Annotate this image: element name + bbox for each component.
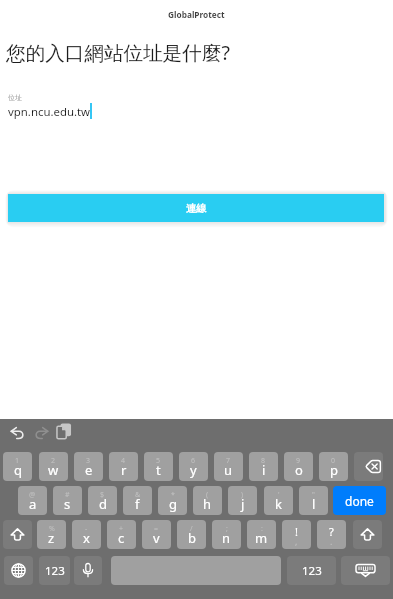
staticText: j <box>241 495 245 513</box>
button[interactable]: 3 <box>74 452 103 481</box>
button[interactable]: : <box>247 520 276 549</box>
staticText: ' <box>278 490 280 500</box>
button[interactable]: ' <box>264 486 293 515</box>
button[interactable]: $ <box>88 486 117 515</box>
staticText: t <box>156 461 161 479</box>
staticText: x <box>83 529 90 547</box>
staticText: l <box>312 495 316 513</box>
staticText: # <box>65 490 70 500</box>
staticText: , <box>295 535 298 547</box>
staticText: a <box>29 495 37 513</box>
staticText: * <box>171 490 175 500</box>
button[interactable]: Undo <box>6 421 28 443</box>
staticText: f <box>135 495 140 513</box>
staticText: & <box>135 490 141 500</box>
staticText: 0 <box>331 456 336 466</box>
button[interactable]: & <box>123 486 152 515</box>
staticText: ) <box>241 490 244 500</box>
button[interactable]: 6 <box>179 452 208 481</box>
staticText: h <box>203 495 212 513</box>
staticText: o <box>295 461 303 479</box>
button[interactable]: 1 <box>3 452 32 481</box>
button[interactable]: 9 <box>284 452 313 481</box>
button[interactable]: # <box>53 486 82 515</box>
staticText: y <box>190 461 197 479</box>
button[interactable]: @ <box>18 486 47 515</box>
button[interactable]: % <box>37 520 66 549</box>
staticText: done <box>345 493 374 509</box>
button[interactable]: ( <box>193 486 222 515</box>
staticText: k <box>275 495 282 513</box>
staticText: g <box>169 495 177 513</box>
staticText: 3 <box>86 456 91 466</box>
staticText: ( <box>206 490 209 500</box>
staticText: @ <box>29 490 36 500</box>
button[interactable]: Backspace <box>354 452 383 481</box>
staticText: 4 <box>121 456 126 466</box>
staticText: 9 <box>296 456 301 466</box>
button[interactable]: 2 <box>39 452 68 481</box>
staticText: i <box>262 461 266 479</box>
staticText: ; <box>226 524 228 534</box>
button[interactable]: ! <box>282 520 311 549</box>
button[interactable]: 5 <box>144 452 173 481</box>
button[interactable]: Shift <box>3 520 32 549</box>
button[interactable]: " <box>299 486 328 515</box>
button[interactable]: 8 <box>249 452 278 481</box>
button[interactable]: + <box>107 520 136 549</box>
button[interactable]: * <box>158 486 187 515</box>
staticText: % <box>49 524 55 534</box>
staticText: m <box>255 529 268 547</box>
staticText: 123 <box>302 563 322 579</box>
staticText: : <box>261 524 263 534</box>
button[interactable]: Hide keyboard <box>341 556 390 585</box>
staticText: n <box>222 529 231 547</box>
button[interactable]: ) <box>228 486 257 515</box>
staticText: 6 <box>191 456 196 466</box>
staticText: z <box>48 529 55 547</box>
staticText: d <box>99 495 107 513</box>
button[interactable]: = <box>142 520 171 549</box>
staticText: r <box>121 461 127 479</box>
staticText: 8 <box>261 456 266 466</box>
staticText: ? <box>329 524 334 539</box>
button[interactable]: 7 <box>214 452 243 481</box>
button[interactable]: Voice input <box>74 556 102 585</box>
staticText: GlobalProtect <box>168 9 225 20</box>
staticText: 123 <box>45 563 65 579</box>
staticText: + <box>119 524 124 534</box>
button[interactable]: done <box>333 486 386 515</box>
staticText: 2 <box>51 456 56 466</box>
staticText: w <box>48 461 59 479</box>
staticText: e <box>85 461 93 479</box>
button[interactable]: / <box>177 520 206 549</box>
staticText: u <box>224 461 233 479</box>
button[interactable]: Redo <box>30 421 52 443</box>
button[interactable]: ; <box>212 520 241 549</box>
staticText: s <box>64 495 71 513</box>
button[interactable]: 123 <box>287 556 336 585</box>
button[interactable]: 0 <box>319 452 348 481</box>
button[interactable]: 123 <box>39 556 70 585</box>
staticText: " <box>312 490 315 500</box>
button[interactable]: Copy <box>53 420 75 442</box>
staticText: 1 <box>15 456 20 466</box>
staticText: 連線 <box>186 202 207 215</box>
button[interactable]: 連線 <box>8 194 384 222</box>
button[interactable]: ? <box>317 520 346 549</box>
staticText: v <box>153 529 160 547</box>
staticText: q <box>14 461 22 479</box>
button[interactable]: 4 <box>109 452 138 481</box>
staticText: ! <box>295 524 298 539</box>
button[interactable]: Shift <box>353 520 382 549</box>
button[interactable]: - <box>72 520 101 549</box>
staticText: = <box>154 524 159 534</box>
staticText: 您的入口網站位址是什麼? <box>6 39 231 66</box>
button[interactable]: Language <box>4 556 33 585</box>
staticText: p <box>330 461 338 479</box>
staticText: $ <box>100 490 105 500</box>
staticText: . <box>330 535 333 547</box>
staticText: 5 <box>156 456 161 466</box>
staticText: 7 <box>226 456 231 466</box>
